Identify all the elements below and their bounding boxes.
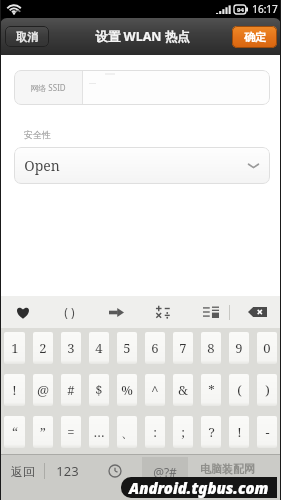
button[interactable]: Recent (99, 456, 131, 486)
staticText: * (208, 381, 215, 399)
button[interactable]: Open (14, 147, 270, 184)
button[interactable]: Brackets (46, 296, 93, 328)
button[interactable]: @?# (142, 457, 188, 487)
staticText: - (265, 423, 270, 441)
staticText: & (178, 381, 188, 399)
staticText: : (153, 423, 157, 441)
button[interactable]: ( (229, 374, 249, 408)
button[interactable]: 5 (117, 332, 137, 366)
button[interactable]: 、 (117, 416, 137, 450)
staticText: @?# (153, 464, 177, 480)
staticText: 6 (151, 339, 159, 357)
staticText: 安全性 (24, 129, 51, 140)
button[interactable]: @ (33, 374, 53, 408)
staticText: 1 (11, 339, 19, 357)
button[interactable]: 返回 (5, 456, 41, 486)
staticText: 取消 (16, 30, 38, 44)
staticText: 8 (207, 339, 215, 357)
button[interactable]: Math symbols (140, 296, 187, 328)
button[interactable]: 8 (201, 332, 221, 366)
staticText: $ (95, 381, 103, 399)
button[interactable]: 确定 (232, 26, 277, 48)
button[interactable]: 4 (89, 332, 109, 366)
button[interactable]: … (89, 416, 109, 450)
button[interactable]: $ (89, 374, 109, 408)
staticText: 设置 WLAN 热点 (95, 28, 190, 45)
button[interactable]: - (257, 416, 277, 450)
staticText: ( (237, 381, 242, 399)
button[interactable]: 0 (257, 332, 277, 366)
staticText: 确定 (244, 30, 266, 44)
staticText: 2 (39, 339, 47, 357)
staticText: … (93, 423, 105, 441)
staticText: ? (208, 423, 215, 441)
staticText: Open (24, 156, 60, 175)
button[interactable]: 123 (49, 456, 85, 486)
staticText: 返回 (11, 464, 35, 479)
staticText: 3 (67, 339, 75, 357)
staticText: 94 (237, 6, 244, 14)
staticText: ” (40, 423, 46, 441)
staticText: ! (237, 423, 242, 441)
staticText: 电脑装配网 (200, 462, 255, 476)
staticText: ; (181, 423, 185, 441)
button[interactable]: 1 (4, 332, 25, 366)
button[interactable]: ) (257, 374, 277, 408)
button[interactable] (195, 455, 275, 500)
button[interactable]: = (61, 416, 81, 450)
button[interactable]: 网络 SSID (14, 70, 270, 105)
staticText: 5 (123, 339, 131, 357)
staticText: ^ (151, 381, 159, 399)
staticText: 4 (95, 339, 103, 357)
staticText: “ (12, 423, 18, 441)
button[interactable]: 取消 (5, 26, 49, 47)
button[interactable]: ? (201, 416, 221, 450)
staticText: ( ) (64, 304, 75, 320)
staticText: 网络 SSID (30, 82, 66, 93)
staticText: 16:17 (252, 2, 278, 16)
button[interactable]: Backspace (234, 296, 281, 328)
button[interactable]: ! (229, 416, 249, 450)
button[interactable]: ! (4, 374, 25, 408)
staticText: = (67, 423, 75, 441)
button[interactable]: ” (33, 416, 53, 450)
button[interactable]: Emoji (0, 296, 46, 328)
staticText: 9 (235, 339, 243, 357)
button[interactable]: 9 (229, 332, 249, 366)
staticText: Android.tgbus.com (129, 478, 269, 498)
button[interactable]: “ (4, 416, 25, 450)
button[interactable]: ; (173, 416, 193, 450)
staticText: ! (12, 381, 17, 399)
button[interactable]: # (61, 374, 81, 408)
button[interactable]: 6 (145, 332, 165, 366)
staticText: 、 (121, 424, 134, 440)
button[interactable]: 7 (173, 332, 193, 366)
button[interactable]: ^ (145, 374, 165, 408)
staticText: 0 (263, 339, 271, 357)
button[interactable]: 3 (61, 332, 81, 366)
staticText: % (121, 381, 133, 399)
button[interactable]: & (173, 374, 193, 408)
button[interactable]: * (201, 374, 221, 408)
button[interactable]: : (145, 416, 165, 450)
button[interactable]: Arrow symbols (93, 296, 140, 328)
staticText: 7 (179, 339, 187, 357)
button[interactable]: % (117, 374, 137, 408)
staticText: 123 (56, 462, 79, 480)
staticText: ) (265, 381, 270, 399)
button[interactable]: Units (187, 296, 234, 328)
staticText: # (67, 381, 75, 399)
button[interactable]: 2 (33, 332, 53, 366)
staticText: @ (37, 381, 49, 399)
